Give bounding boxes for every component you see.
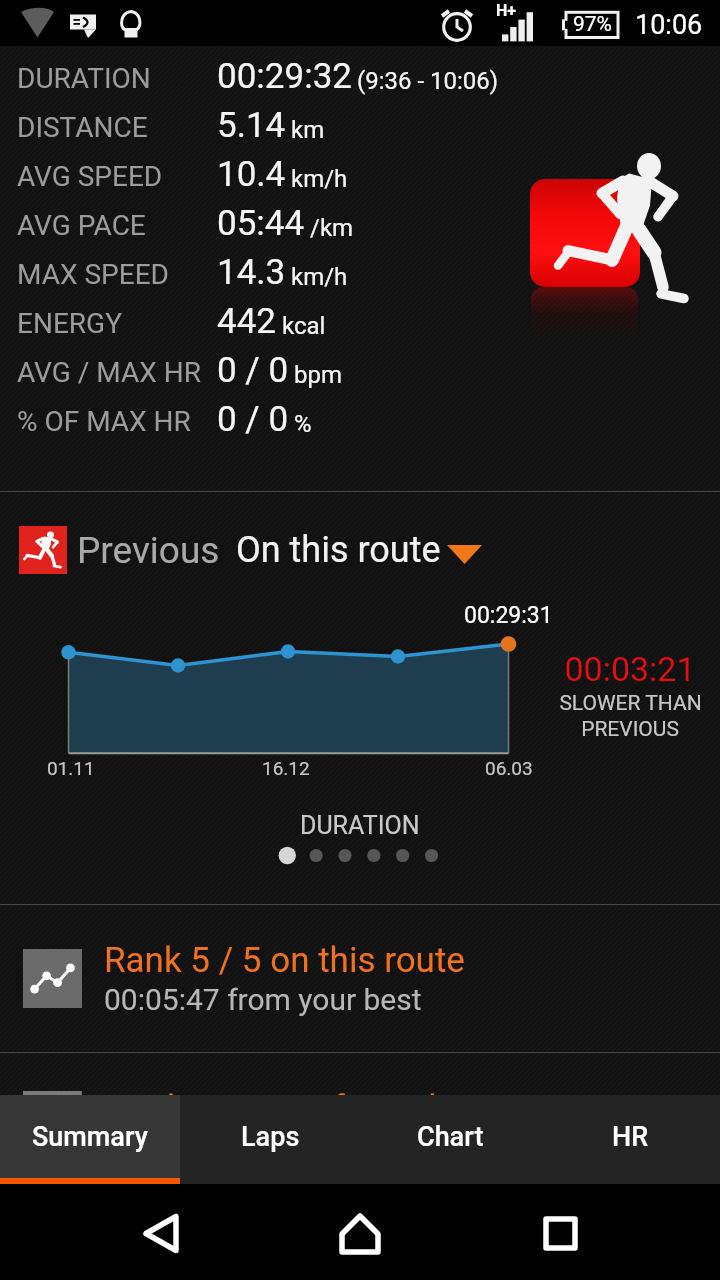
staticText: /km	[310, 214, 354, 242]
staticText: 05:44	[217, 203, 305, 242]
staticText: Chart	[417, 1121, 484, 1153]
button[interactable]: Rank 12 / 12 of.. in the city	[0, 1053, 720, 1095]
button[interactable]: HR	[540, 1095, 720, 1178]
staticText: bpm	[294, 361, 342, 389]
staticText: HR	[612, 1121, 649, 1153]
staticText: km	[291, 116, 325, 144]
staticText: km/h	[291, 165, 348, 193]
button[interactable]: Recents	[520, 1187, 600, 1280]
staticText: 10:06	[635, 9, 703, 41]
staticText: PREVIOUS	[581, 717, 679, 742]
staticText: (9:36 - 10:06)	[357, 67, 499, 95]
staticText: MAX SPEED	[17, 258, 169, 291]
staticText: DISTANCE	[17, 111, 148, 144]
button[interactable]: Home	[320, 1187, 400, 1280]
staticText: DURATION	[17, 62, 151, 95]
button[interactable]: Previous	[19, 492, 720, 608]
staticText: 0 / 0	[217, 399, 289, 438]
staticText: H+	[496, 1, 517, 20]
staticText: Laps	[241, 1121, 300, 1153]
staticText: Previous	[77, 529, 220, 572]
button[interactable]: Summary	[0, 1095, 180, 1178]
staticText: 0 / 0	[217, 350, 289, 389]
staticText: AVG SPEED	[17, 160, 163, 193]
staticText: 14.3	[217, 252, 286, 291]
button[interactable]: Laps	[180, 1095, 360, 1178]
staticText: AVG / MAX HR	[17, 356, 201, 389]
staticText: 00:29:31	[464, 602, 553, 629]
staticText: 00:05:47 from your best	[104, 982, 422, 1017]
staticText: 00:29:32	[217, 56, 352, 95]
staticText: AVG PACE	[17, 209, 146, 242]
staticText: On this route	[236, 529, 441, 571]
staticText: kcal	[282, 312, 326, 340]
staticText: 97%	[573, 12, 612, 37]
staticText: DURATION	[300, 811, 420, 840]
staticText: Summary	[32, 1121, 148, 1153]
staticText: Rank 12 / 12 of.. in the city	[107, 1088, 530, 1129]
staticText: %	[294, 410, 312, 438]
staticText: SLOWER THAN	[559, 691, 702, 716]
staticText: 442	[217, 301, 277, 340]
staticText: 5.14	[217, 105, 286, 144]
staticText: 01.11	[47, 757, 95, 779]
staticText: 06.03	[485, 757, 533, 779]
staticText: 00:03:21	[564, 649, 696, 689]
staticText: 16.12	[262, 757, 310, 779]
button[interactable]: Back	[120, 1187, 200, 1280]
staticText: ENERGY	[17, 307, 122, 340]
staticText: % OF MAX HR	[17, 405, 191, 438]
button[interactable]: Chart	[360, 1095, 540, 1178]
staticText: km/h	[291, 263, 348, 291]
staticText: Rank 5 / 5 on this route	[104, 940, 465, 981]
button[interactable]: Rank 5 / 5 on this route	[23, 905, 720, 1052]
staticText: 10.4	[217, 154, 286, 193]
